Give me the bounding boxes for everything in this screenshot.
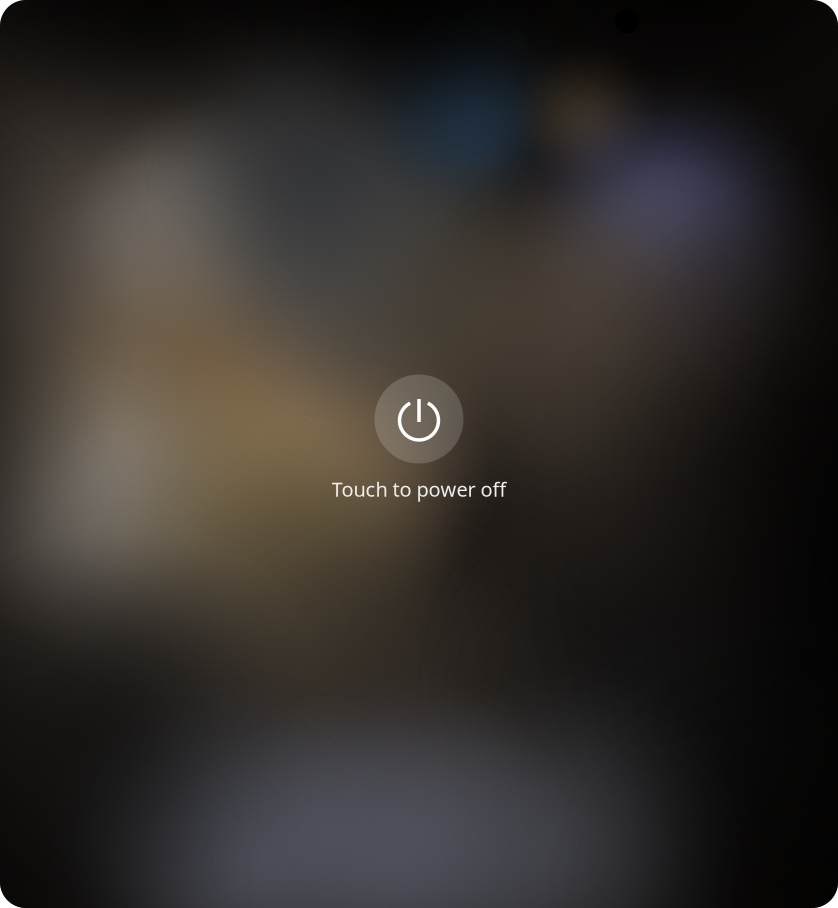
staticText: Touch to power off <box>331 476 506 502</box>
button[interactable]: Power off <box>374 374 463 463</box>
